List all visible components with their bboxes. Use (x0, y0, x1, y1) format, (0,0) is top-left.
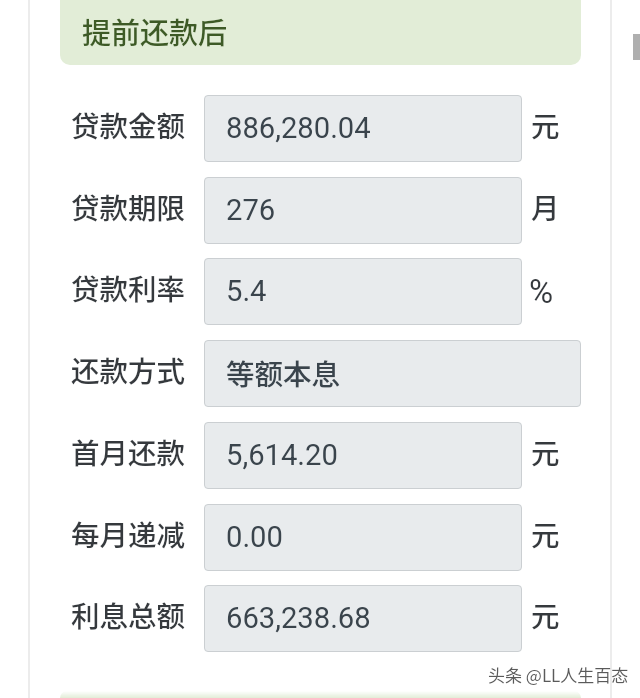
button[interactable]: 5.4 (204, 258, 522, 325)
staticText: 首月还款 (71, 431, 186, 472)
button[interactable]: 等额本息 (204, 340, 581, 407)
button[interactable]: 886,280.04 (204, 95, 522, 162)
staticText: 头条 @LL人生百态 (488, 662, 629, 687)
staticText: 每月递减 (71, 513, 186, 554)
staticText: 元 (531, 513, 560, 554)
staticText: 5.4 (226, 274, 267, 308)
staticText: 提前还款后 (82, 10, 228, 52)
staticText: 等额本息 (226, 352, 341, 393)
button[interactable]: 276 (204, 177, 522, 244)
button[interactable]: 663,238.68 (204, 585, 522, 652)
button[interactable]: 0.00 (204, 504, 522, 571)
button[interactable]: 提前还款后 (60, 0, 581, 65)
staticText: 5,614.20 (226, 438, 338, 472)
staticText: 利息总额 (71, 594, 186, 635)
staticText: % (529, 272, 554, 311)
staticText: 886,280.04 (226, 111, 371, 145)
staticText: 还款方式 (71, 349, 186, 390)
button[interactable]: 5,614.20 (204, 422, 522, 489)
staticText: 276 (226, 193, 276, 227)
staticText: 月 (531, 186, 560, 227)
staticText: 元 (531, 431, 560, 472)
staticText: 663,238.68 (226, 601, 371, 635)
staticText: 0.00 (226, 520, 283, 554)
staticText: 贷款金额 (71, 104, 186, 145)
staticText: 元 (531, 104, 560, 145)
staticText: 贷款利率 (71, 267, 186, 308)
staticText: 元 (531, 594, 560, 635)
staticText: 贷款期限 (71, 186, 186, 227)
